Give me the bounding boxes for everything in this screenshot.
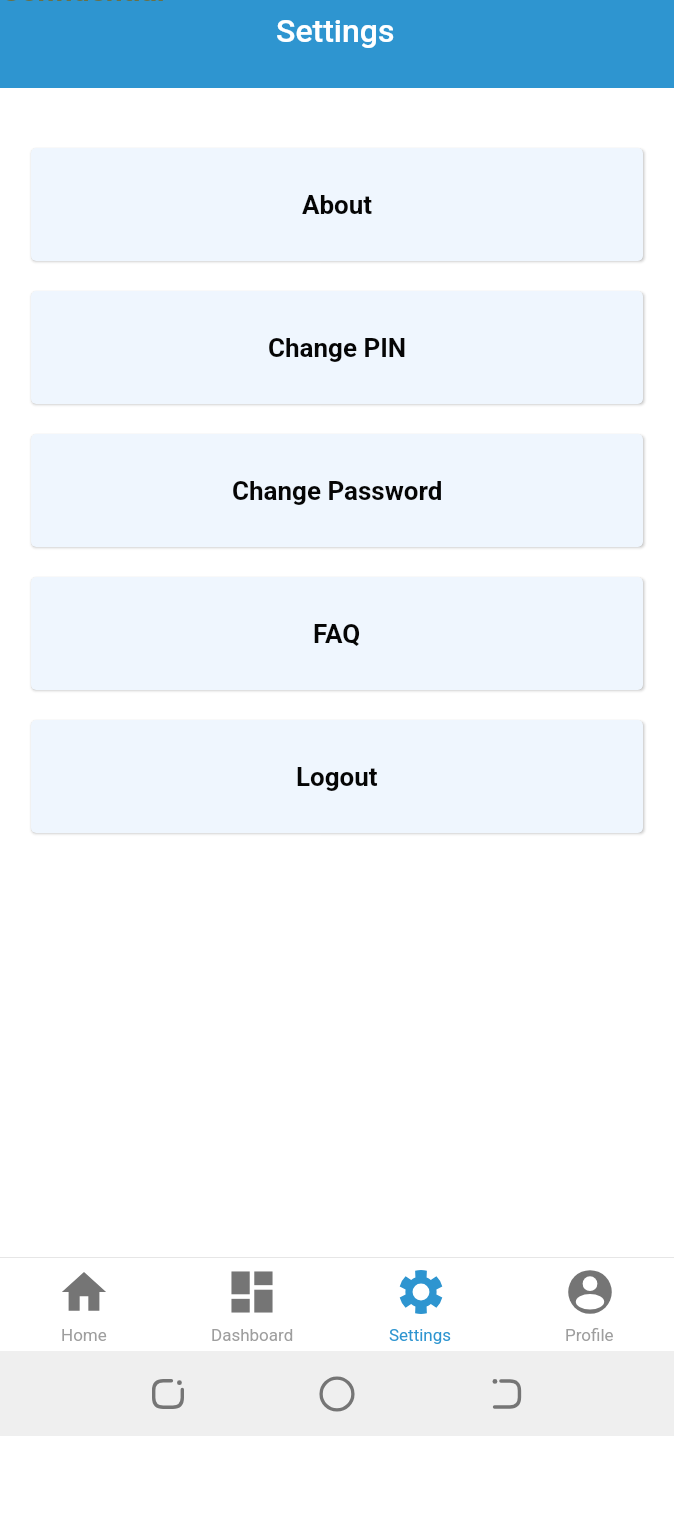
staticText: Change Password — [232, 476, 443, 506]
button[interactable]: Settings — [336, 1258, 505, 1351]
staticText: Confidential — [1, 0, 165, 8]
button[interactable]: Home — [317, 1374, 357, 1414]
button[interactable]: Recent apps — [148, 1374, 188, 1414]
staticText: About — [302, 190, 373, 220]
staticText: Settings — [389, 1325, 452, 1345]
staticText: Logout — [296, 762, 378, 792]
button[interactable]: Home — [0, 1258, 168, 1351]
button[interactable]: Dashboard — [168, 1258, 336, 1351]
staticText: Home — [61, 1325, 107, 1345]
staticText: FAQ — [313, 619, 361, 649]
button[interactable]: Change PIN — [31, 291, 643, 404]
button[interactable]: FAQ — [31, 577, 643, 690]
staticText: Profile — [565, 1325, 614, 1345]
staticText: Change PIN — [268, 333, 407, 363]
button[interactable]: Back — [485, 1374, 525, 1414]
button[interactable]: About — [31, 148, 643, 261]
staticText: Dashboard — [211, 1325, 294, 1345]
button[interactable]: Change Password — [31, 434, 643, 547]
staticText: Settings — [276, 12, 395, 50]
button[interactable]: Logout — [31, 720, 643, 833]
button[interactable]: Profile — [505, 1258, 674, 1351]
